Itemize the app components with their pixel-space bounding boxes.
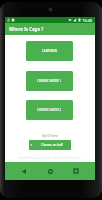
button[interactable]: CAMPAIGN — [26, 41, 73, 61]
button[interactable]: CHRONO MODE 1 — [26, 71, 73, 91]
staticText: Where Is Cage ? — [9, 26, 44, 32]
staticText: CHRONO MODE 1 — [37, 79, 62, 83]
staticText: CAMPAIGN — [42, 49, 58, 53]
button[interactable]: Back — [17, 164, 31, 178]
staticText: Hall Of Fame — [5, 134, 95, 138]
button[interactable]: Home — [43, 164, 57, 178]
staticText: 13:46 — [82, 18, 93, 23]
button[interactable]: CHRONO MODE 2 — [26, 100, 73, 120]
staticText: Install this awesome free app now! Click… — [5, 156, 95, 160]
staticText: Choose an half — [41, 143, 63, 147]
staticText: CHRONO MODE 2 — [37, 108, 62, 112]
button[interactable]: Recent apps — [69, 164, 83, 178]
button[interactable]: Choose an half — [29, 140, 71, 150]
